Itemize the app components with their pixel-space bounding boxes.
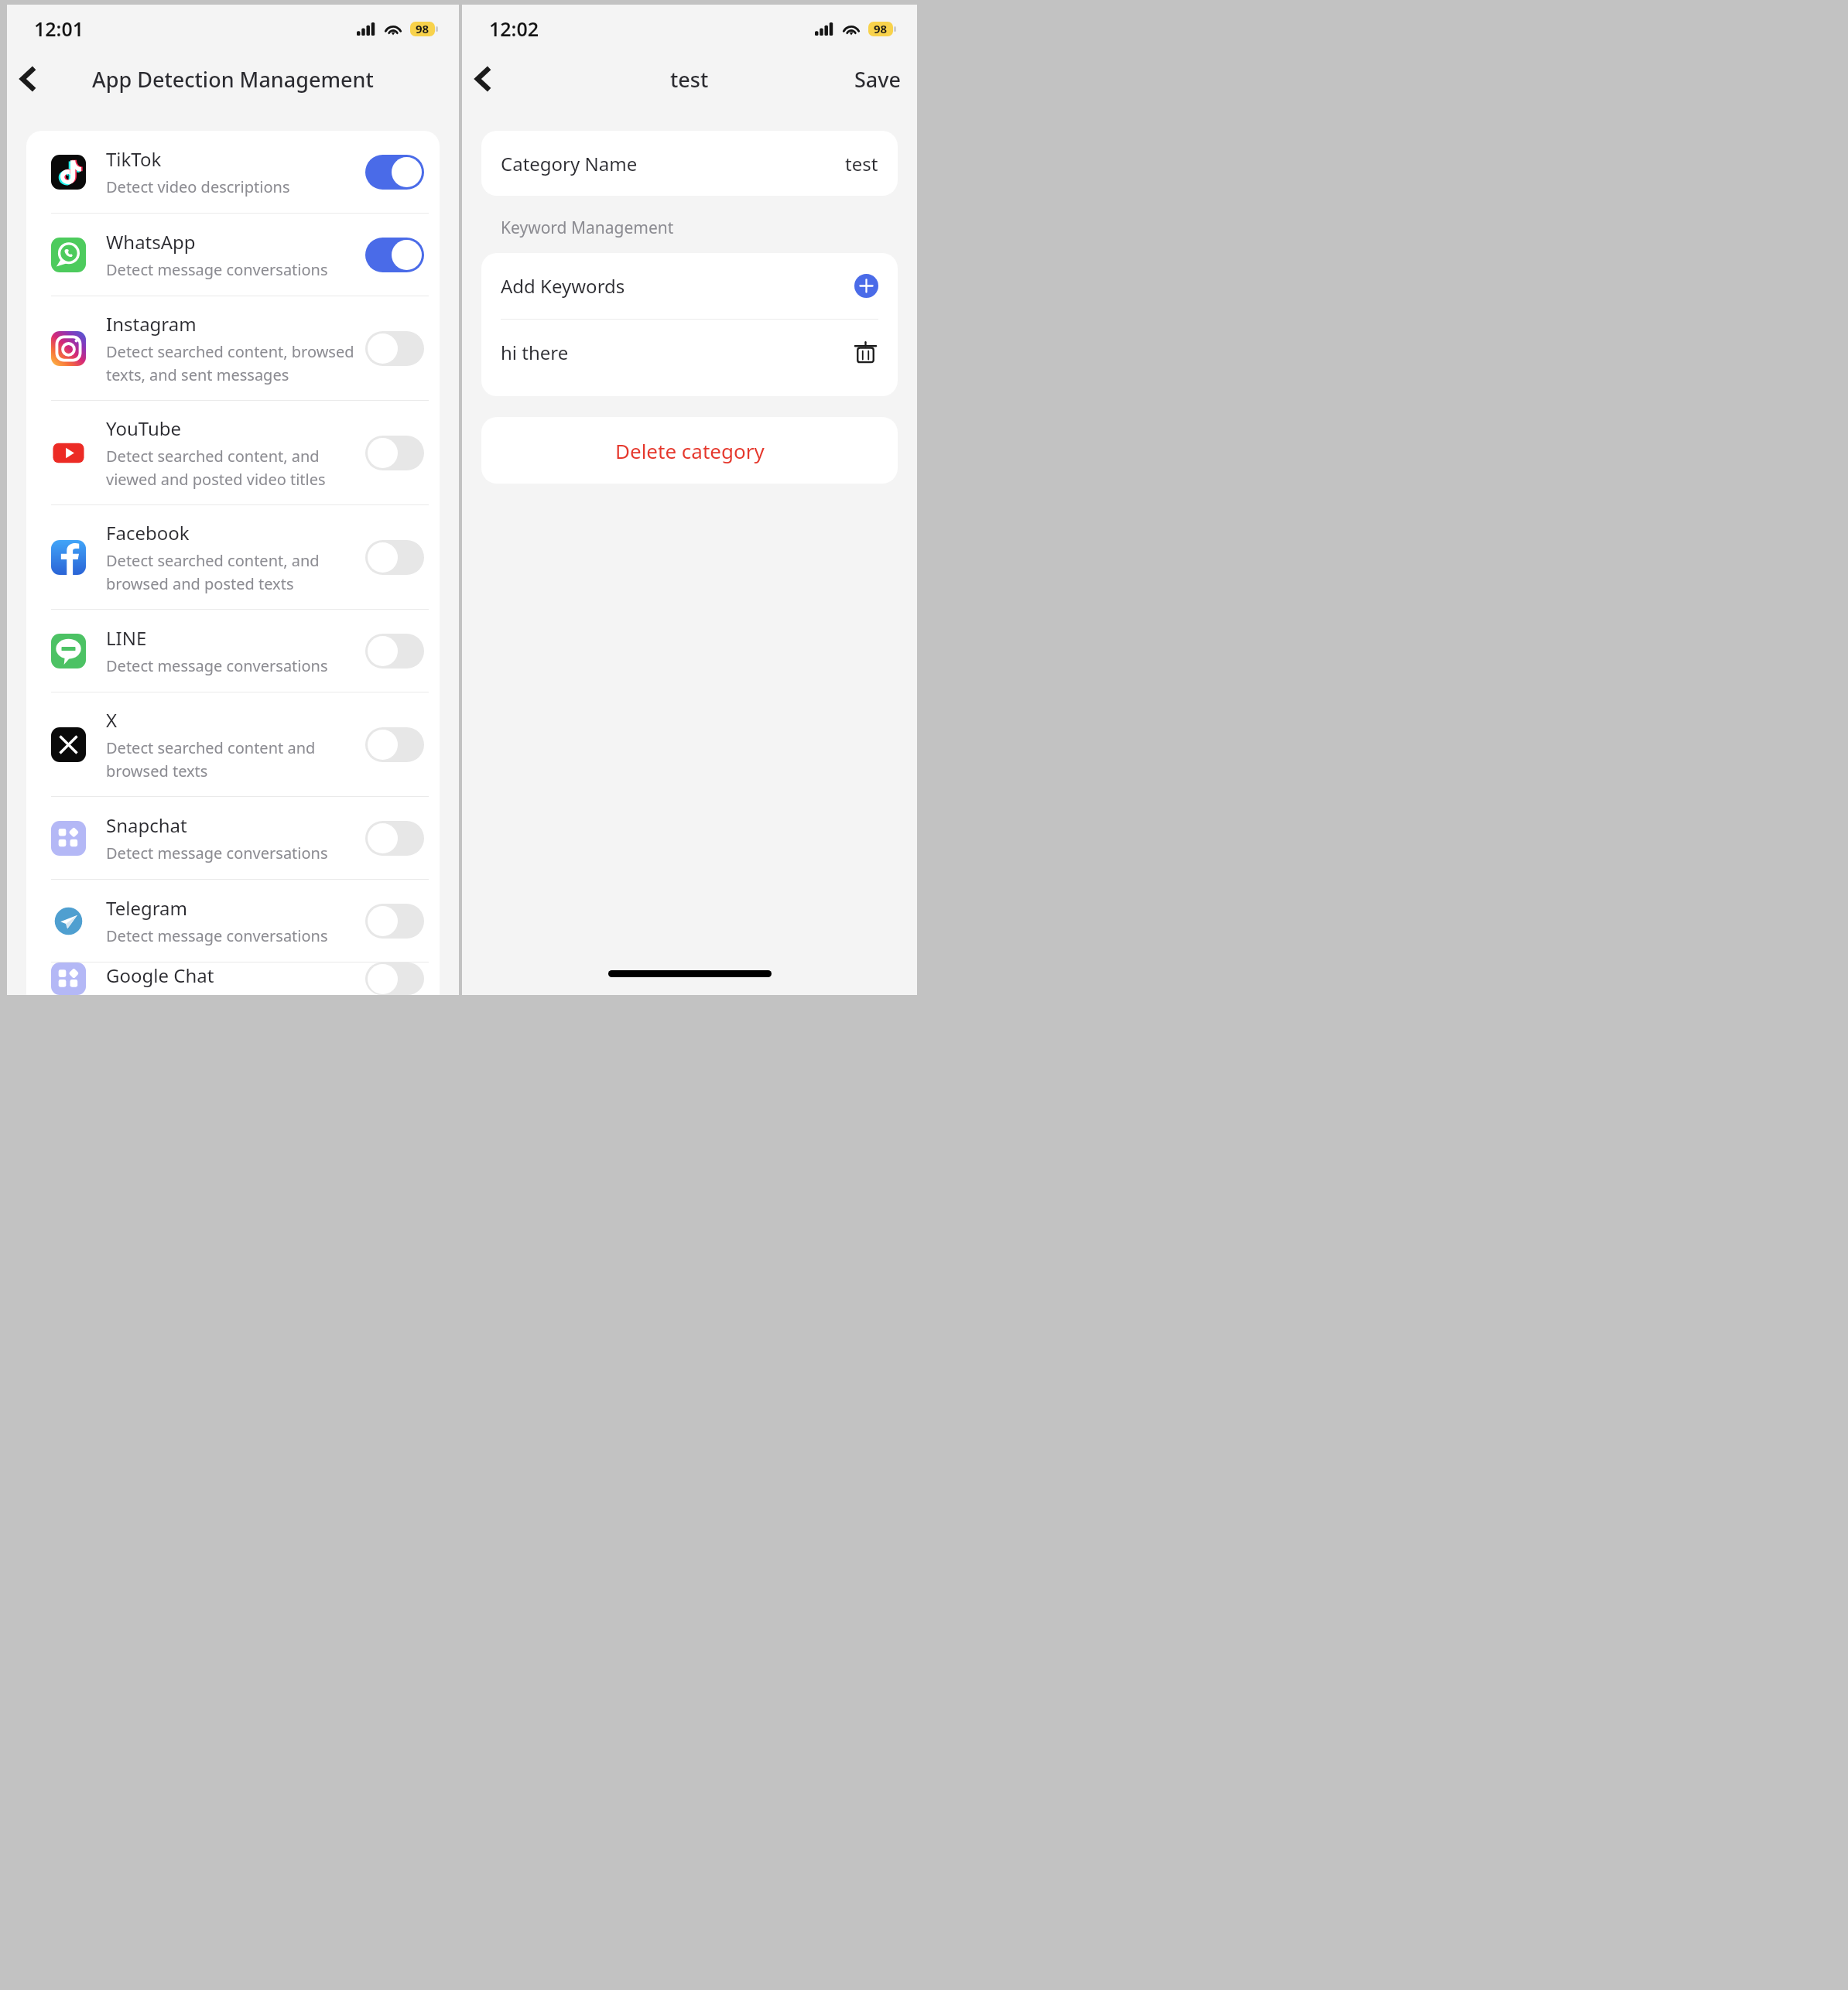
button[interactable]: Disabled — [365, 821, 424, 856]
button[interactable]: Disabled — [365, 436, 424, 470]
staticText: Google Chat — [106, 963, 214, 988]
staticText: Detect searched content and browsed text… — [106, 737, 316, 781]
button[interactable]: Disabled — [365, 727, 424, 762]
staticText: Category Name — [501, 151, 638, 176]
button[interactable]: Add Keywords — [481, 253, 898, 319]
button[interactable]: Snapchat — [26, 797, 440, 879]
button[interactable]: hi there — [481, 320, 898, 385]
button[interactable]: Disabled — [365, 634, 424, 668]
staticText: Detect searched content, and browsed and… — [106, 550, 320, 594]
button[interactable]: Disabled — [365, 963, 424, 995]
button[interactable]: Category Name — [481, 131, 898, 196]
button[interactable]: Disabled — [365, 904, 424, 939]
staticText: Snapchat — [106, 812, 187, 838]
staticText: Detect message conversations — [106, 843, 328, 863]
staticText: Detect message conversations — [106, 259, 328, 280]
staticText: 98 — [874, 21, 888, 36]
staticText: WhatsApp — [106, 229, 196, 255]
button[interactable]: Enabled — [365, 155, 424, 190]
staticText: LINE — [106, 625, 147, 651]
staticText: hi there — [501, 340, 569, 365]
staticText: Detect searched content, and viewed and … — [106, 446, 326, 490]
button[interactable]: Instagram — [26, 296, 440, 400]
staticText: 12:01 — [34, 15, 84, 42]
button[interactable]: WhatsApp — [26, 214, 440, 296]
staticText: 12:02 — [489, 15, 539, 42]
button[interactable]: Disabled — [365, 331, 424, 366]
button[interactable]: Back — [463, 59, 503, 99]
button[interactable]: Delete keyword — [853, 340, 878, 365]
button[interactable]: Add keyword — [854, 274, 878, 298]
button[interactable]: Facebook — [26, 505, 440, 609]
staticText: App Detection Management — [92, 65, 374, 94]
staticText: Detect video descriptions — [106, 176, 290, 197]
button[interactable]: X — [26, 692, 440, 796]
staticText: Delete category — [615, 437, 765, 464]
staticText: Detect message conversations — [106, 925, 328, 946]
button[interactable]: Save — [839, 57, 917, 101]
button[interactable]: LINE — [26, 610, 440, 692]
button[interactable]: Google Chat — [26, 963, 440, 995]
staticText: TikTok — [106, 146, 162, 172]
staticText: Detect message conversations — [106, 655, 328, 676]
staticText: Save — [854, 65, 902, 94]
button[interactable]: Back — [8, 59, 48, 99]
button[interactable]: Disabled — [365, 540, 424, 575]
staticText: test — [845, 151, 878, 176]
staticText: Telegram — [106, 895, 188, 921]
staticText: test — [670, 65, 709, 94]
button[interactable]: Enabled — [365, 238, 424, 272]
button[interactable]: YouTube — [26, 401, 440, 504]
staticText: Instagram — [106, 311, 197, 337]
button[interactable]: TikTok — [26, 131, 440, 213]
button[interactable]: Telegram — [26, 880, 440, 962]
button[interactable]: Delete category — [481, 417, 898, 484]
staticText: Add Keywords — [501, 273, 625, 299]
staticText: 98 — [416, 21, 429, 36]
staticText: Facebook — [106, 520, 190, 545]
staticText: Keyword Management — [501, 217, 674, 239]
staticText: YouTube — [106, 415, 182, 441]
staticText: X — [106, 707, 118, 733]
staticText: Detect searched content, browsed texts, … — [106, 341, 354, 385]
